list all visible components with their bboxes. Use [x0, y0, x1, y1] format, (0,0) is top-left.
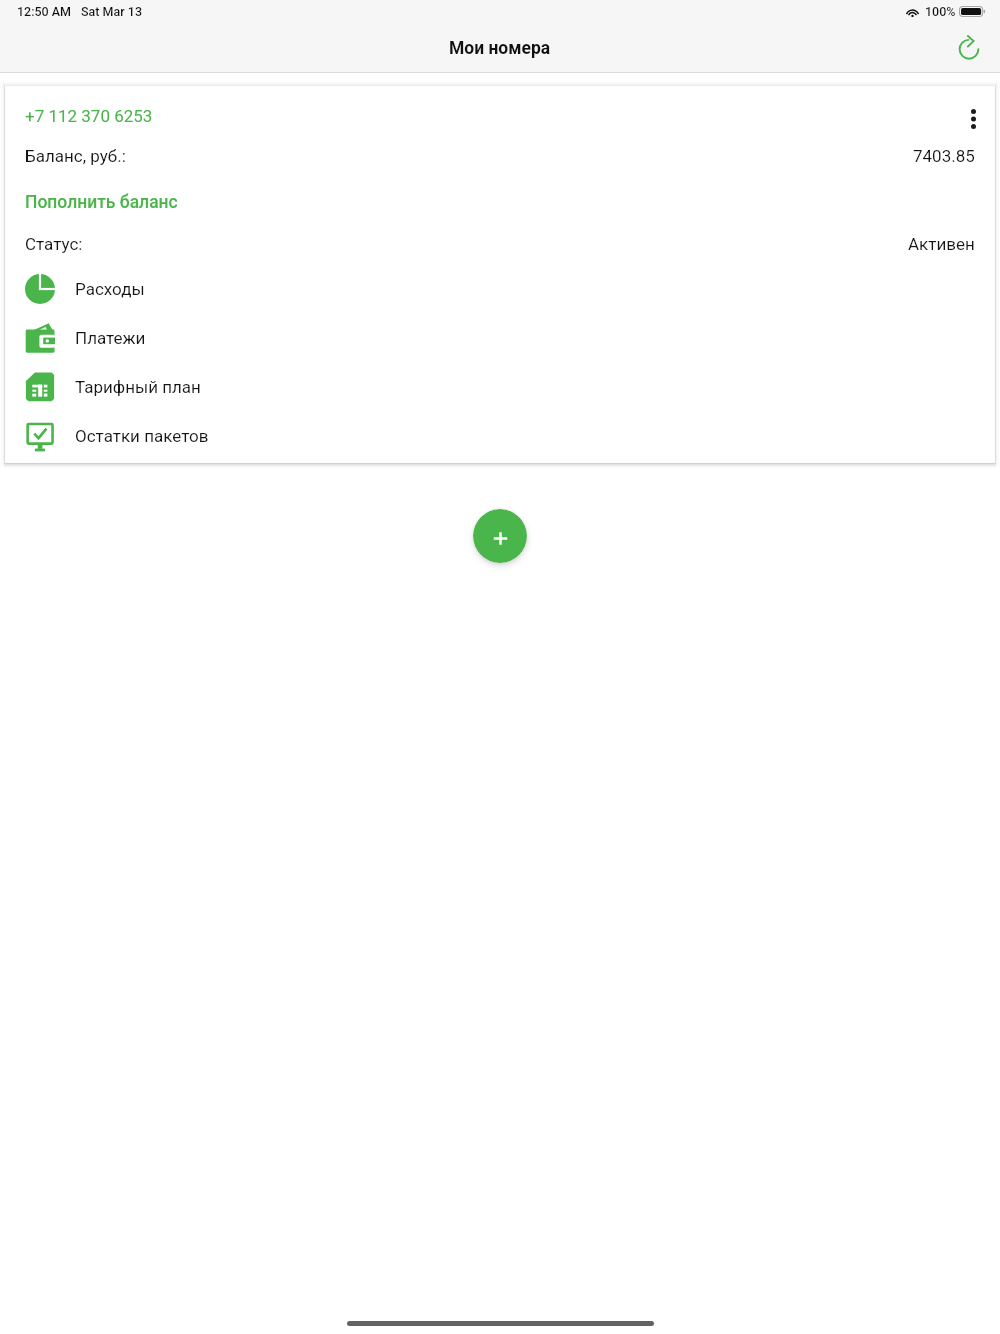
button[interactable]: Add number: [473, 509, 527, 563]
staticText: +7 112 370 6253: [25, 106, 153, 126]
staticText: Sat Mar 13: [81, 4, 142, 19]
staticText: 100%: [925, 4, 956, 19]
staticText: Статус:: [25, 234, 83, 254]
staticText: Активен: [908, 234, 975, 254]
staticText: Мои номера: [449, 38, 551, 59]
button[interactable]: Пополнить баланс: [5, 192, 995, 213]
staticText: Тарифный план: [75, 377, 201, 397]
button[interactable]: More options: [956, 109, 990, 129]
button[interactable]: Refresh: [950, 30, 988, 68]
staticText: Остатки пакетов: [75, 426, 209, 446]
button[interactable]: Расходы: [5, 264, 995, 313]
button[interactable]: Платежи: [5, 313, 995, 362]
button[interactable]: Тарифный план: [5, 362, 995, 411]
staticText: Платежи: [75, 328, 146, 348]
staticText: Пополнить баланс: [25, 192, 178, 213]
staticText: Расходы: [75, 279, 145, 299]
staticText: Баланс, руб.:: [25, 146, 126, 166]
staticText: 12:50 AM: [17, 4, 72, 19]
button[interactable]: Остатки пакетов: [5, 411, 995, 460]
staticText: 7403.85: [913, 146, 975, 166]
